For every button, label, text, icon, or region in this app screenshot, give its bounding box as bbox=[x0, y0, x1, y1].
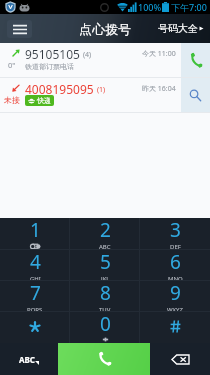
staticText: 7 bbox=[30, 280, 41, 306]
button[interactable]: ABC bbox=[0, 343, 58, 375]
staticText: TUV bbox=[99, 306, 111, 311]
staticText: 8 bbox=[100, 280, 111, 306]
staticText: GHI bbox=[30, 275, 41, 280]
staticText: 4008195095 bbox=[25, 81, 94, 97]
button[interactable]: 0 bbox=[70, 312, 140, 343]
button[interactable]: 5 bbox=[70, 250, 140, 281]
staticText: ABC bbox=[99, 243, 111, 249]
staticText: ABC bbox=[19, 354, 35, 365]
button[interactable]: 号码大全 bbox=[156, 18, 206, 39]
button[interactable]: 7 bbox=[0, 281, 70, 312]
button[interactable]: 6 bbox=[140, 250, 210, 281]
button[interactable]: 8 bbox=[70, 281, 140, 312]
staticText: 未接 bbox=[4, 95, 20, 105]
button[interactable]: Call bbox=[58, 343, 150, 375]
button[interactable] bbox=[0, 312, 70, 343]
staticText: 1 bbox=[30, 217, 41, 243]
staticText: (4) bbox=[83, 50, 92, 60]
button[interactable]: 0" bbox=[0, 43, 181, 78]
staticText: WXYZ bbox=[167, 306, 183, 311]
staticText: 昨天 16:04 bbox=[142, 84, 176, 94]
staticText: 9 bbox=[170, 280, 181, 306]
staticText: 3 bbox=[170, 217, 181, 243]
staticText: JKL bbox=[101, 275, 110, 280]
button[interactable]: Delete bbox=[150, 343, 210, 375]
button[interactable]: 4 bbox=[0, 250, 70, 281]
staticText: 下午7:00 bbox=[171, 1, 207, 13]
button[interactable]: 9 bbox=[140, 281, 210, 312]
staticText: 点心拨号 bbox=[79, 21, 131, 37]
staticText: 5 bbox=[100, 249, 111, 275]
staticText: PQRS bbox=[27, 306, 43, 311]
button[interactable]: Menu bbox=[7, 20, 32, 38]
button[interactable]: Call bbox=[181, 43, 210, 78]
button[interactable]: 2 bbox=[70, 218, 140, 250]
staticText: 2 bbox=[100, 217, 111, 243]
button[interactable]: 未接 bbox=[0, 78, 181, 113]
staticText: 100% bbox=[138, 1, 162, 13]
staticText: 铁道部订票电话 bbox=[25, 62, 74, 71]
staticText: 4 bbox=[30, 249, 41, 275]
staticText: 快递 bbox=[37, 96, 51, 105]
staticText: MNO bbox=[168, 275, 183, 280]
staticText: 今天 11:00 bbox=[142, 49, 176, 59]
button[interactable]: Search bbox=[181, 78, 210, 113]
button[interactable] bbox=[140, 312, 210, 343]
staticText: 号码大全 bbox=[158, 22, 198, 35]
staticText: 95105105 bbox=[25, 46, 80, 62]
staticText: DEF bbox=[170, 243, 181, 249]
staticText: (1) bbox=[97, 85, 106, 95]
button[interactable]: 3 bbox=[140, 218, 210, 250]
button[interactable]: 1 bbox=[0, 218, 70, 250]
staticText: 0" bbox=[8, 60, 16, 70]
staticText: 0 bbox=[100, 311, 111, 337]
staticText: 6 bbox=[170, 249, 181, 275]
